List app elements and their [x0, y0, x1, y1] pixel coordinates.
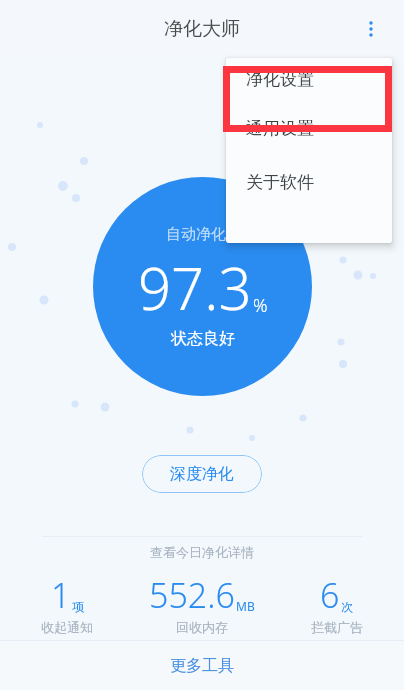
button[interactable]: 深度净化	[142, 455, 262, 493]
button[interactable]: More options	[349, 7, 393, 51]
staticText: %	[253, 293, 268, 318]
staticText: 1	[51, 572, 71, 618]
staticText: 次	[341, 599, 353, 614]
staticText: 拦截广告	[311, 619, 363, 635]
button[interactable]: 6	[269, 572, 404, 635]
staticText: 关于软件	[246, 172, 314, 193]
staticText: 净化大师	[164, 17, 240, 41]
button[interactable]: 1	[0, 572, 134, 635]
button[interactable]: 552.6	[134, 572, 269, 635]
staticText: 状态良好	[171, 329, 235, 349]
staticText: 收起通知	[41, 619, 93, 635]
staticText: MB	[236, 598, 255, 614]
staticText: 回收内存	[176, 619, 228, 635]
staticText: 项	[72, 599, 84, 614]
staticText: 552.6	[149, 572, 235, 618]
button[interactable]: 关于软件	[226, 156, 392, 209]
staticText: 净化设置	[246, 69, 314, 90]
staticText: 深度净化	[170, 464, 234, 484]
button[interactable]: 更多工具	[0, 641, 404, 690]
staticText: 97.3	[138, 248, 252, 327]
staticText: 自动净化中	[166, 225, 241, 244]
button[interactable]: 查看今日净化详情	[0, 544, 404, 560]
staticText: 查看今日净化详情	[150, 544, 254, 560]
staticText: 通用设置	[246, 118, 314, 139]
button[interactable]: 净化设置	[226, 58, 392, 101]
staticText: 更多工具	[170, 656, 234, 676]
button[interactable]: 通用设置	[226, 101, 392, 156]
button[interactable]: 自动净化中	[93, 177, 312, 396]
staticText: 6	[320, 572, 340, 618]
